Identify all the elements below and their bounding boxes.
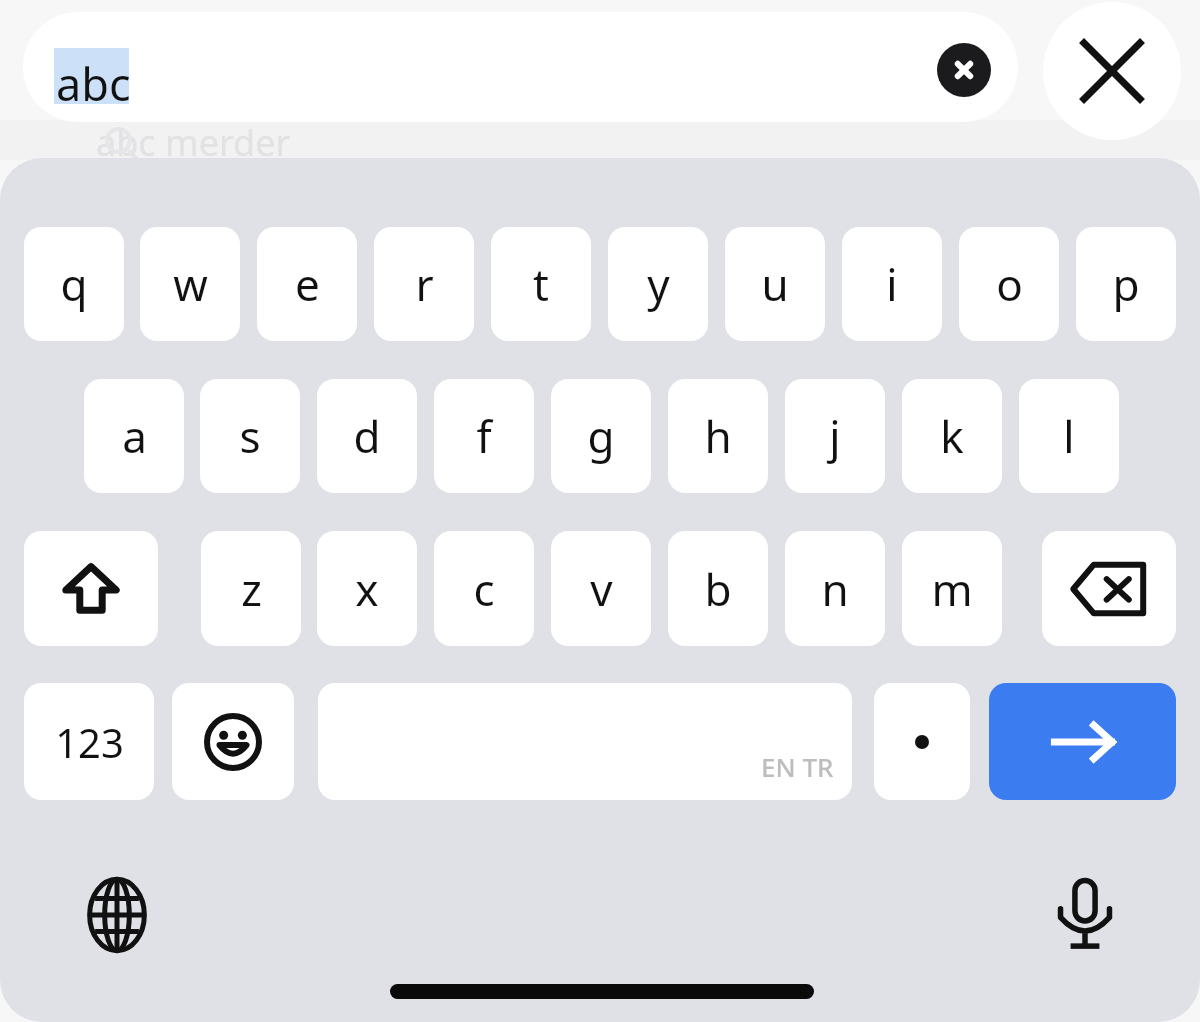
staticText: m [931,559,973,619]
button[interactable]: z [201,531,301,646]
staticText: q [60,254,88,314]
staticText: g [587,406,615,466]
button[interactable]: Backspace [1042,531,1176,646]
button[interactable]: n [785,531,885,646]
staticText: p [1112,254,1140,314]
button[interactable]: s [200,379,300,493]
staticText: x [355,559,379,619]
staticText: y [647,254,670,314]
button[interactable]: d [317,379,417,493]
button[interactable]: w [140,227,240,341]
staticText: j [829,406,841,466]
staticText: EN TR [761,749,834,784]
staticText: w [173,254,208,314]
staticText: abc [56,53,131,114]
button[interactable]: y [608,227,708,341]
button[interactable]: r [374,227,474,341]
button[interactable]: p [1076,227,1176,341]
staticText: i [886,254,898,314]
staticText: o [996,254,1023,314]
button[interactable]: q [24,227,124,341]
button[interactable]: a [84,379,184,493]
staticText: d [353,406,381,466]
button[interactable]: t [491,227,591,341]
button[interactable]: h [668,379,768,493]
staticText: u [761,254,789,314]
button[interactable]: k [902,379,1002,493]
staticText: k [940,406,964,466]
button[interactable]: m [902,531,1002,646]
button[interactable]: e [257,227,357,341]
staticText: h [704,406,732,466]
staticText: n [821,559,849,619]
staticText: v [590,559,613,619]
button[interactable]: Space [318,683,852,800]
button[interactable]: l [1019,379,1119,493]
staticText: f [476,406,492,466]
button[interactable]: abc [23,12,1018,122]
button[interactable]: Close [1043,2,1181,140]
button[interactable]: o [959,227,1059,341]
button[interactable]: b [668,531,768,646]
button[interactable]: f [434,379,534,493]
staticText: b [704,559,732,619]
staticText: c [473,559,495,619]
staticText: s [239,406,261,466]
button[interactable]: g [551,379,651,493]
button[interactable]: Clear text [937,43,991,97]
staticText: t [533,254,549,314]
button[interactable]: Shift [24,531,158,646]
button[interactable]: 123 [24,683,154,800]
staticText: e [295,254,320,314]
button[interactable]: Emoji [172,683,294,800]
button[interactable]: i [842,227,942,341]
button[interactable]: Change keyboard language [72,870,162,960]
button[interactable]: Voice input [1040,868,1130,958]
button[interactable]: Period [874,683,970,800]
button[interactable]: j [785,379,885,493]
staticText: z [241,559,262,619]
staticText: a [122,406,147,466]
button[interactable]: c [434,531,534,646]
button[interactable]: u [725,227,825,341]
button[interactable]: v [551,531,651,646]
staticText: r [415,254,434,314]
button[interactable]: x [317,531,417,646]
staticText: l [1063,406,1075,466]
staticText: 123 [55,715,124,769]
staticText: abc merder [96,118,291,167]
button[interactable]: Enter [989,683,1176,800]
